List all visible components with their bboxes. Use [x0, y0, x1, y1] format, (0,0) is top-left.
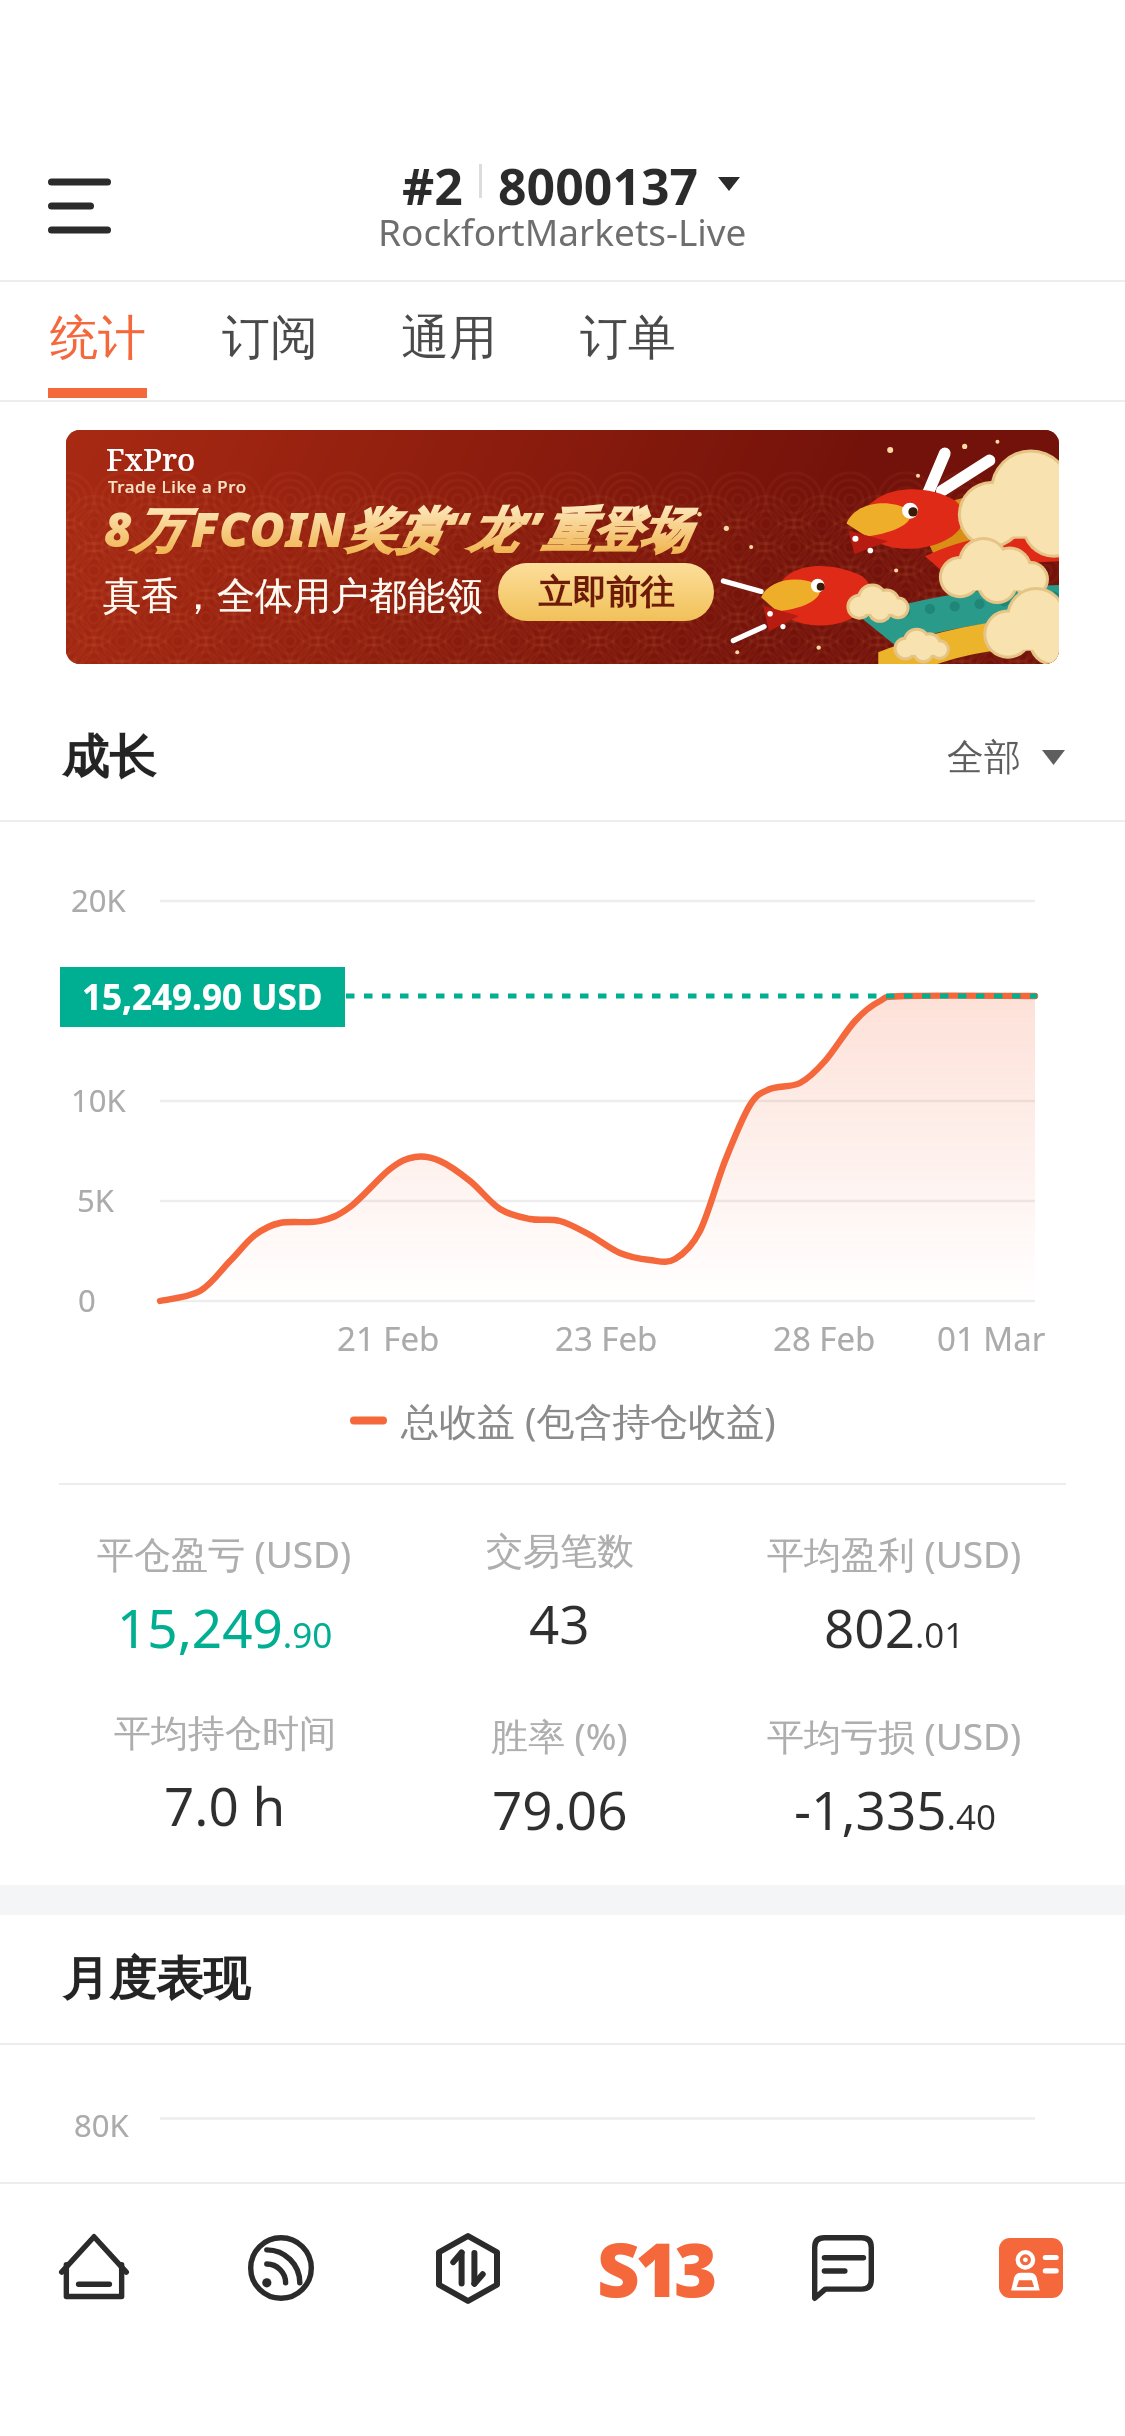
staticText: 8万 FCOIN奖赏“龙”重登场 [104, 496, 689, 562]
staticText: 28 Feb [773, 1316, 876, 1361]
staticText: 802.01 [824, 1591, 965, 1663]
button[interactable]: 通用 [399, 282, 498, 400]
staticText: 01 Mar [937, 1316, 1046, 1361]
staticText: 平均盈利 (USD) [767, 1528, 1022, 1579]
staticText: RockfortMarkets-Live [378, 206, 747, 256]
staticText: 21 Feb [337, 1316, 440, 1361]
staticText: 平均亏损 (USD) [767, 1710, 1022, 1761]
button[interactable]: FxPro [66, 430, 1059, 664]
button[interactable]: 立即前往 [498, 563, 714, 621]
staticText: 订阅 [222, 308, 318, 368]
button[interactable]: 订阅 [220, 282, 319, 400]
staticText: 总收益 (包含持仓收益) [401, 1394, 776, 1446]
staticText: 月度表现 [62, 1950, 250, 2009]
staticText: 平均持仓时间 [114, 1710, 336, 1757]
staticText: #2 [402, 152, 463, 210]
staticText: 统计 [50, 308, 146, 368]
button[interactable]: Menu [28, 156, 132, 256]
staticText: -1,335.40 [794, 1773, 996, 1845]
staticText: 全部 [947, 734, 1021, 781]
staticText: 5K [77, 1179, 114, 1221]
staticText: FxPro [106, 438, 196, 480]
staticText: 43 [529, 1587, 590, 1659]
staticText: 15,249.90 USD [82, 973, 323, 1021]
button[interactable]: Chat [749, 2182, 937, 2354]
staticText: 8000137 [498, 152, 699, 210]
staticText: 订单 [580, 308, 676, 368]
staticText: 立即前往 [538, 571, 674, 614]
button[interactable]: 订单 [578, 282, 677, 400]
button[interactable]: Trade [374, 2182, 561, 2354]
button[interactable]: S13 [561, 2182, 749, 2354]
staticText: 23 Feb [555, 1316, 658, 1361]
staticText: 通用 [401, 308, 497, 368]
staticText: 80K [74, 2104, 129, 2146]
staticText: S13 [597, 2218, 713, 2319]
staticText: 胜率 (%) [491, 1710, 628, 1761]
staticText: 79.06 [492, 1773, 628, 1845]
staticText: Trade Like a Pro [108, 475, 247, 498]
button[interactable]: #2 [402, 152, 740, 210]
button[interactable]: 统计 [48, 282, 147, 400]
staticText: 10K [71, 1079, 126, 1121]
staticText: 7.0 h [164, 1769, 286, 1841]
button[interactable]: 全部 [947, 734, 1065, 781]
button[interactable]: Profile [937, 2182, 1125, 2354]
staticText: 真香，全体用户都能领 [103, 572, 483, 620]
staticText: 成长 [62, 728, 156, 787]
button[interactable]: Signals [187, 2182, 374, 2354]
staticText: 平仓盈亏 (USD) [97, 1528, 352, 1579]
staticText: 20K [71, 879, 126, 921]
staticText: 0 [78, 1279, 96, 1321]
button[interactable]: Home [0, 2182, 187, 2354]
staticText: 15,249.90 [117, 1591, 333, 1663]
staticText: 交易笔数 [486, 1528, 634, 1575]
